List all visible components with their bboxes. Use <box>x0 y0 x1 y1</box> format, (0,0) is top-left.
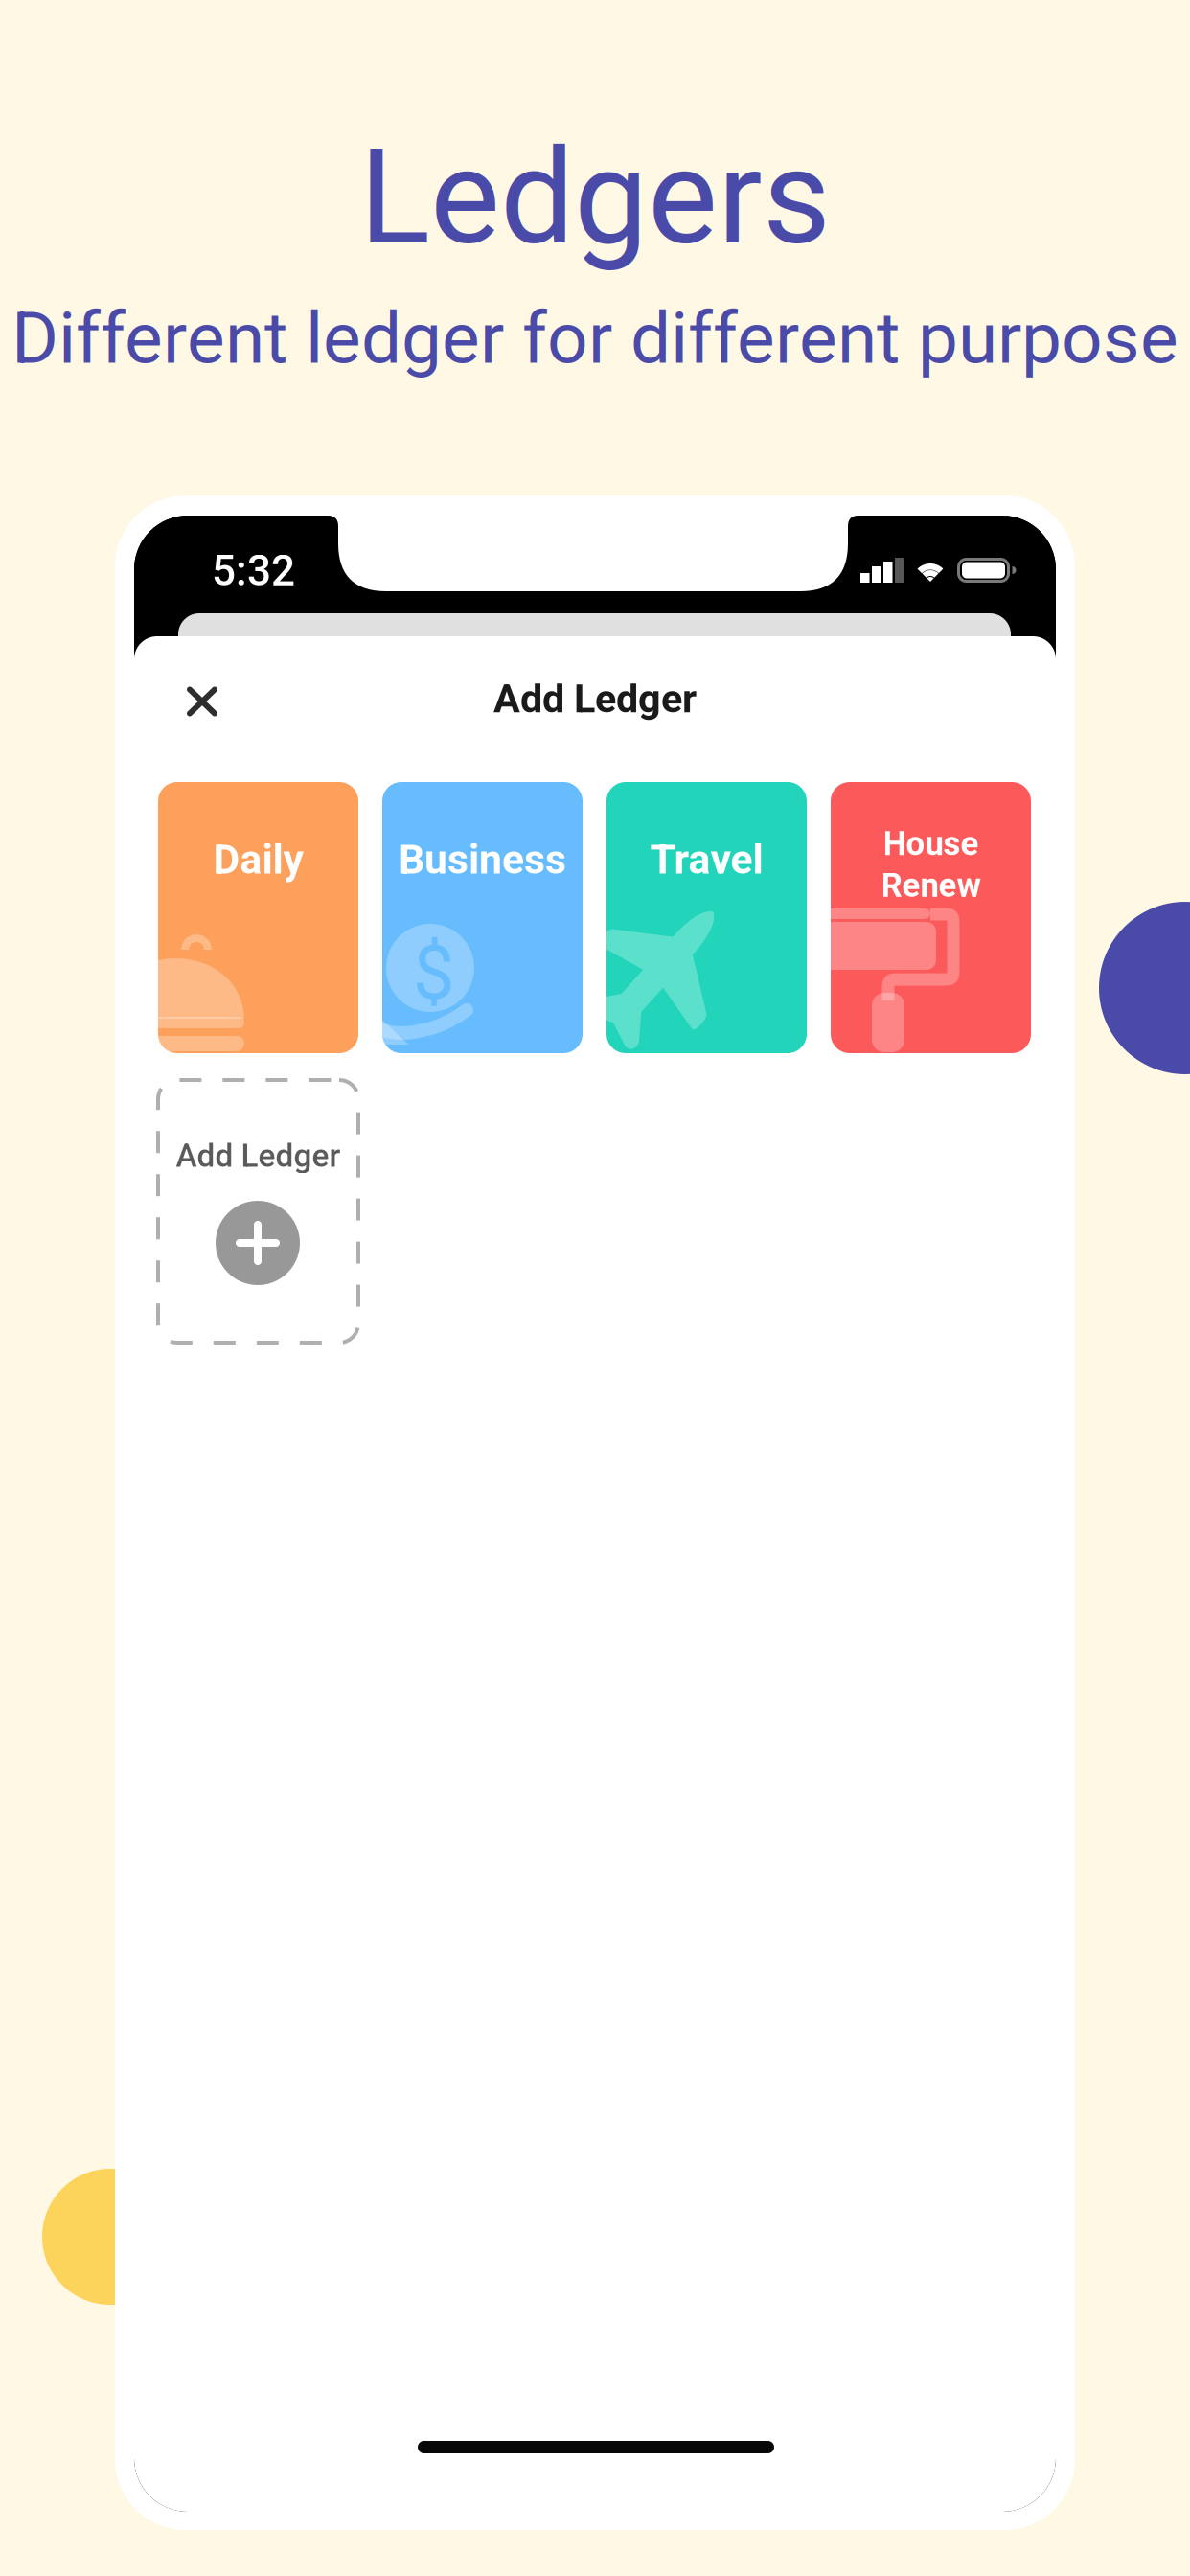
staticText: Ledgers <box>359 120 831 274</box>
staticText: Renew <box>881 866 981 905</box>
button[interactable]: $ <box>382 782 583 1053</box>
button[interactable]: House <box>831 782 1031 1053</box>
button[interactable]: Daily <box>158 782 358 1053</box>
staticText: Add Ledger <box>493 675 697 722</box>
staticText: Add Ledger <box>176 1137 341 1175</box>
staticText: Business <box>399 836 566 884</box>
staticText: Daily <box>213 836 303 884</box>
staticText: Travel <box>650 836 763 884</box>
staticText: 5:32 <box>212 546 295 596</box>
button[interactable]: Close <box>162 661 242 742</box>
staticText: $ <box>413 930 454 1016</box>
button[interactable]: Travel <box>606 782 807 1053</box>
staticText: House <box>883 824 979 863</box>
staticText: Different ledger for different purpose <box>11 296 1179 380</box>
button[interactable]: Add Ledger <box>156 1078 360 1345</box>
